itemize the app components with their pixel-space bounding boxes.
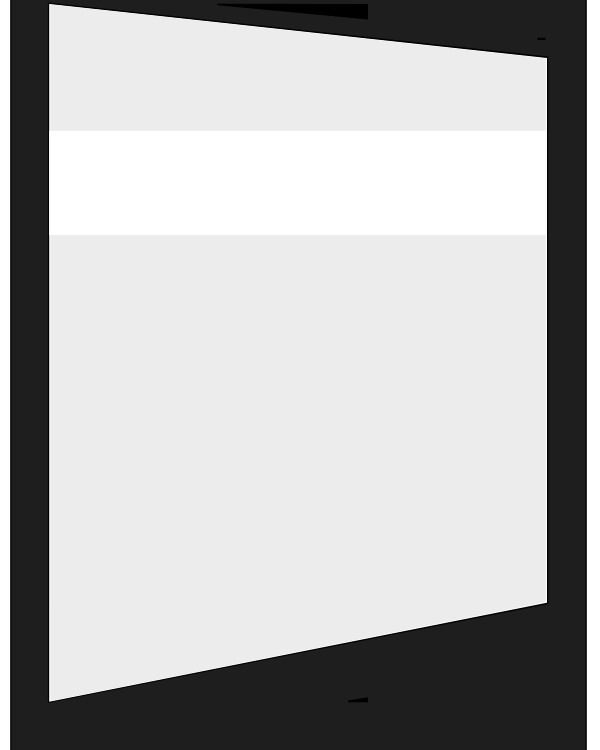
button[interactable]: Side button — [538, 33, 548, 45]
